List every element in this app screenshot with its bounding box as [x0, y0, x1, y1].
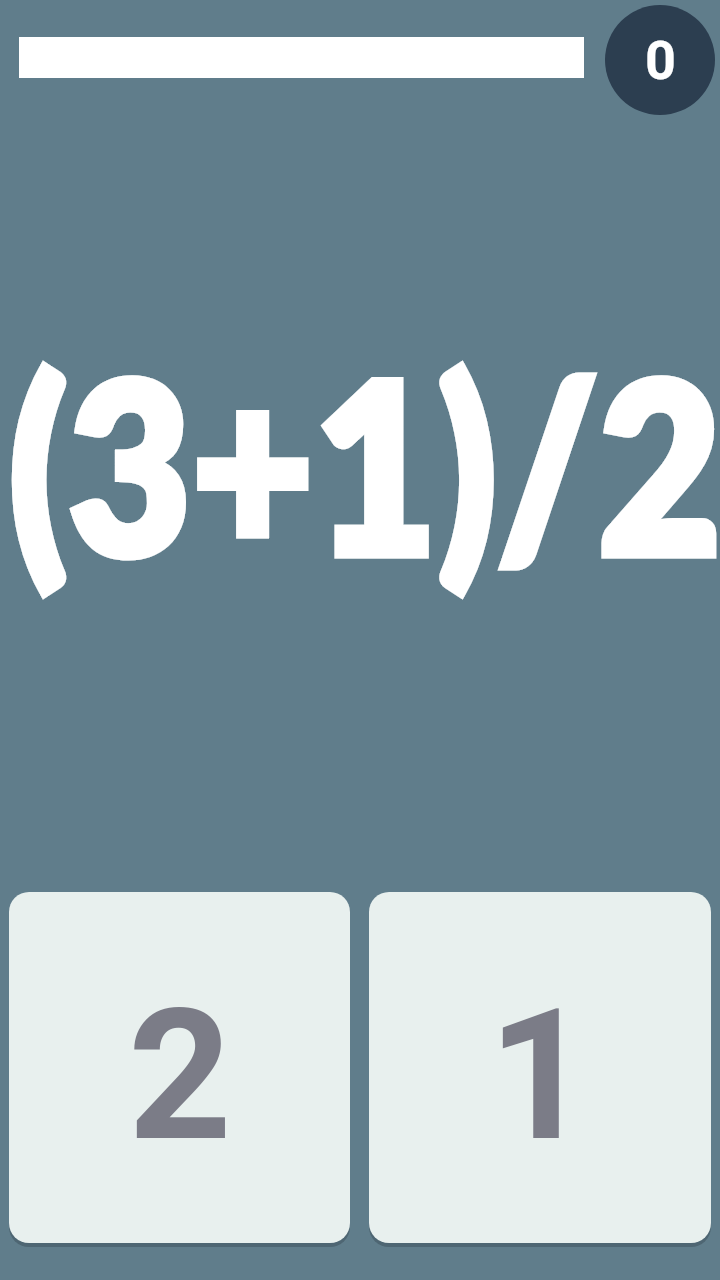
button[interactable]: Score [605, 5, 715, 115]
staticText: (3+1)/2 [0, 319, 720, 606]
button[interactable]: 2 [9, 892, 350, 1243]
staticText: 1 [488, 970, 592, 1182]
staticText: 2 [128, 970, 232, 1182]
staticText: (3+1)/2 [0, 319, 720, 606]
button[interactable]: 1 [369, 892, 711, 1243]
staticText: 0 [645, 29, 676, 92]
